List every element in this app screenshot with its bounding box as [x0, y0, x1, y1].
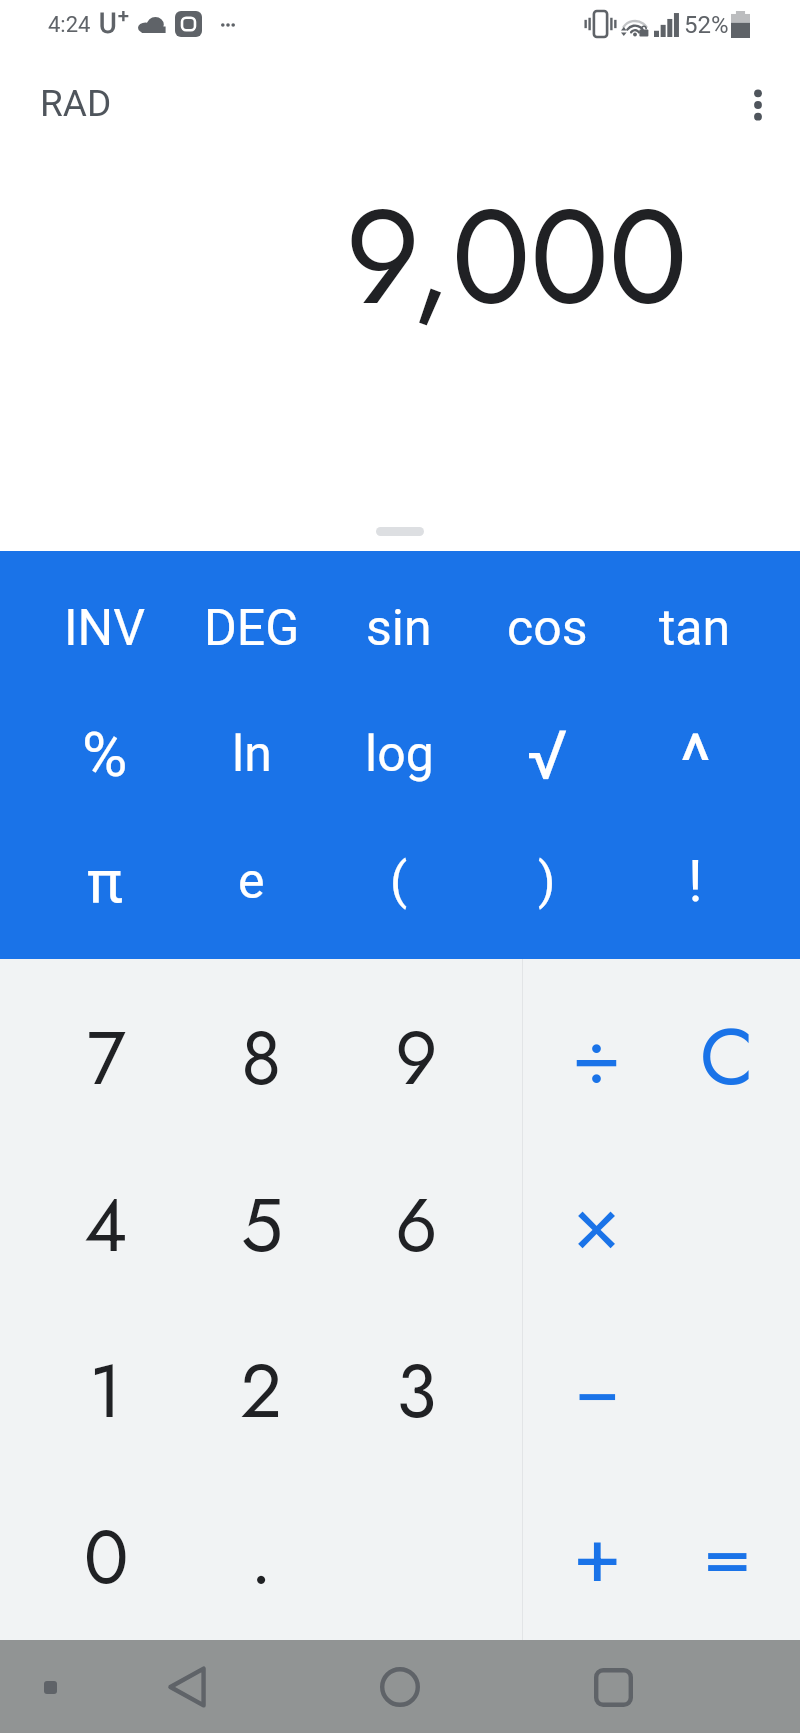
staticText: RAD	[40, 82, 112, 125]
button[interactable]: 8	[184, 975, 339, 1142]
button[interactable]: π	[31, 818, 178, 945]
button[interactable]: More options	[722, 69, 793, 140]
button[interactable]: ln	[178, 691, 325, 818]
button[interactable]: %	[31, 691, 178, 818]
button[interactable]: ÷	[532, 975, 662, 1142]
staticText: 3	[396, 1338, 437, 1445]
button[interactable]: log	[325, 691, 473, 818]
button[interactable]: 1	[28, 1308, 184, 1474]
staticText: C	[700, 999, 755, 1113]
staticText: U	[99, 8, 117, 40]
button[interactable]: (	[325, 818, 473, 945]
staticText: ln	[232, 725, 272, 784]
button[interactable]: 7	[28, 975, 184, 1142]
button[interactable]: sin	[325, 565, 473, 691]
button[interactable]: .	[184, 1474, 339, 1640]
staticText: 4:24	[48, 12, 91, 38]
staticText: −	[574, 1331, 621, 1445]
staticText: ^	[680, 717, 711, 804]
staticText: %	[82, 718, 128, 791]
button[interactable]: C	[662, 975, 792, 1142]
staticText: 8	[241, 1005, 282, 1112]
staticText: cos	[507, 599, 588, 658]
button[interactable]: 9	[339, 975, 494, 1142]
staticText: sin	[366, 599, 432, 658]
button[interactable]: 5	[184, 1142, 339, 1308]
staticText: =	[703, 1497, 752, 1611]
staticText: INV	[64, 599, 146, 658]
button[interactable]: tan	[621, 565, 769, 691]
button[interactable]: ×	[532, 1142, 662, 1308]
button[interactable]: DEG	[178, 565, 325, 691]
staticText: ×	[573, 1165, 621, 1279]
staticText: 9	[395, 1005, 438, 1112]
button[interactable]: 3	[339, 1308, 494, 1474]
button[interactable]: +	[532, 1474, 662, 1640]
staticText: log	[365, 725, 434, 784]
button[interactable]: Home	[362, 1649, 438, 1725]
button[interactable]: 9,000	[345, 163, 688, 352]
staticText: 2	[240, 1338, 283, 1445]
button[interactable]: !	[621, 818, 769, 945]
button[interactable]: )	[473, 818, 621, 945]
staticText: (	[390, 852, 408, 911]
button[interactable]: INV	[31, 565, 178, 691]
staticText: 0	[84, 1504, 129, 1611]
button[interactable]: −	[532, 1308, 662, 1474]
button[interactable]: 6	[339, 1142, 494, 1308]
button[interactable]: √	[473, 691, 621, 818]
staticText: 6	[395, 1172, 438, 1279]
button[interactable]: 0	[28, 1474, 184, 1640]
staticText: 7	[87, 1005, 126, 1112]
staticText: +	[118, 4, 129, 26]
staticText: .	[250, 1504, 273, 1611]
button[interactable]: RAD	[20, 68, 132, 139]
button[interactable]: 4	[28, 1142, 184, 1308]
staticText: 52%	[684, 11, 729, 39]
staticText: DEG	[204, 599, 300, 658]
button[interactable]: 2	[184, 1308, 339, 1474]
staticText: 5	[241, 1172, 283, 1279]
staticText: tan	[659, 599, 731, 658]
staticText: ÷	[572, 999, 622, 1113]
button[interactable]: e	[178, 818, 325, 945]
button[interactable]: cos	[473, 565, 621, 691]
staticText: +	[573, 1497, 622, 1611]
staticText: e	[238, 852, 265, 911]
button[interactable]: Pin navigation bar	[24, 1661, 76, 1713]
staticText: 4	[84, 1172, 128, 1279]
staticText: )	[538, 852, 556, 911]
staticText: !	[688, 848, 703, 915]
staticText: 1	[89, 1338, 123, 1445]
button[interactable]: ^	[621, 691, 769, 818]
staticText: π	[87, 846, 123, 916]
button[interactable]: Recent apps	[575, 1649, 651, 1725]
button[interactable]: =	[662, 1474, 792, 1640]
button[interactable]: Back	[149, 1649, 225, 1725]
staticText: √	[527, 716, 568, 796]
